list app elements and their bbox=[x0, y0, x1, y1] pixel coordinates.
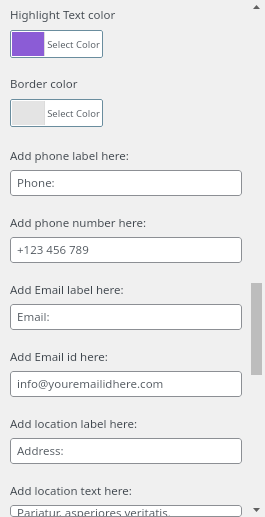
button[interactable]: +123 456 789 bbox=[10, 237, 242, 263]
staticText: Add Email label here: bbox=[10, 282, 124, 298]
staticText: Select Color bbox=[47, 38, 100, 51]
button[interactable]: Scroll up bbox=[248, 0, 265, 14]
staticText: Add phone label here: bbox=[10, 148, 129, 164]
staticText: Add Email id here: bbox=[10, 349, 108, 365]
staticText: Select Color bbox=[47, 107, 100, 120]
staticText: +123 456 789 bbox=[17, 242, 89, 258]
staticText: info@youremailidhere.com bbox=[17, 376, 164, 392]
button[interactable]: Select Color bbox=[10, 30, 103, 58]
staticText: Highlight Text color bbox=[10, 7, 116, 23]
button[interactable]: Phone: bbox=[10, 170, 242, 196]
staticText: Phone: bbox=[17, 175, 55, 191]
staticText: Pariatur, asperiores veritatis. bbox=[17, 505, 171, 517]
staticText: Address: bbox=[17, 443, 64, 459]
button[interactable]: Scroll down bbox=[248, 503, 265, 517]
button[interactable]: Select Color bbox=[10, 99, 103, 127]
button[interactable]: Email: bbox=[10, 304, 242, 330]
staticText: Add location label here: bbox=[10, 416, 138, 432]
staticText: Border color bbox=[10, 76, 78, 92]
staticText: Add phone number here: bbox=[10, 215, 147, 231]
staticText: Add location text here: bbox=[10, 483, 132, 499]
button[interactable]: Address: bbox=[10, 438, 242, 464]
staticText: Email: bbox=[17, 309, 50, 325]
button[interactable]: Pariatur, asperiores veritatis. bbox=[10, 505, 242, 517]
button[interactable]: info@youremailidhere.com bbox=[10, 371, 242, 397]
